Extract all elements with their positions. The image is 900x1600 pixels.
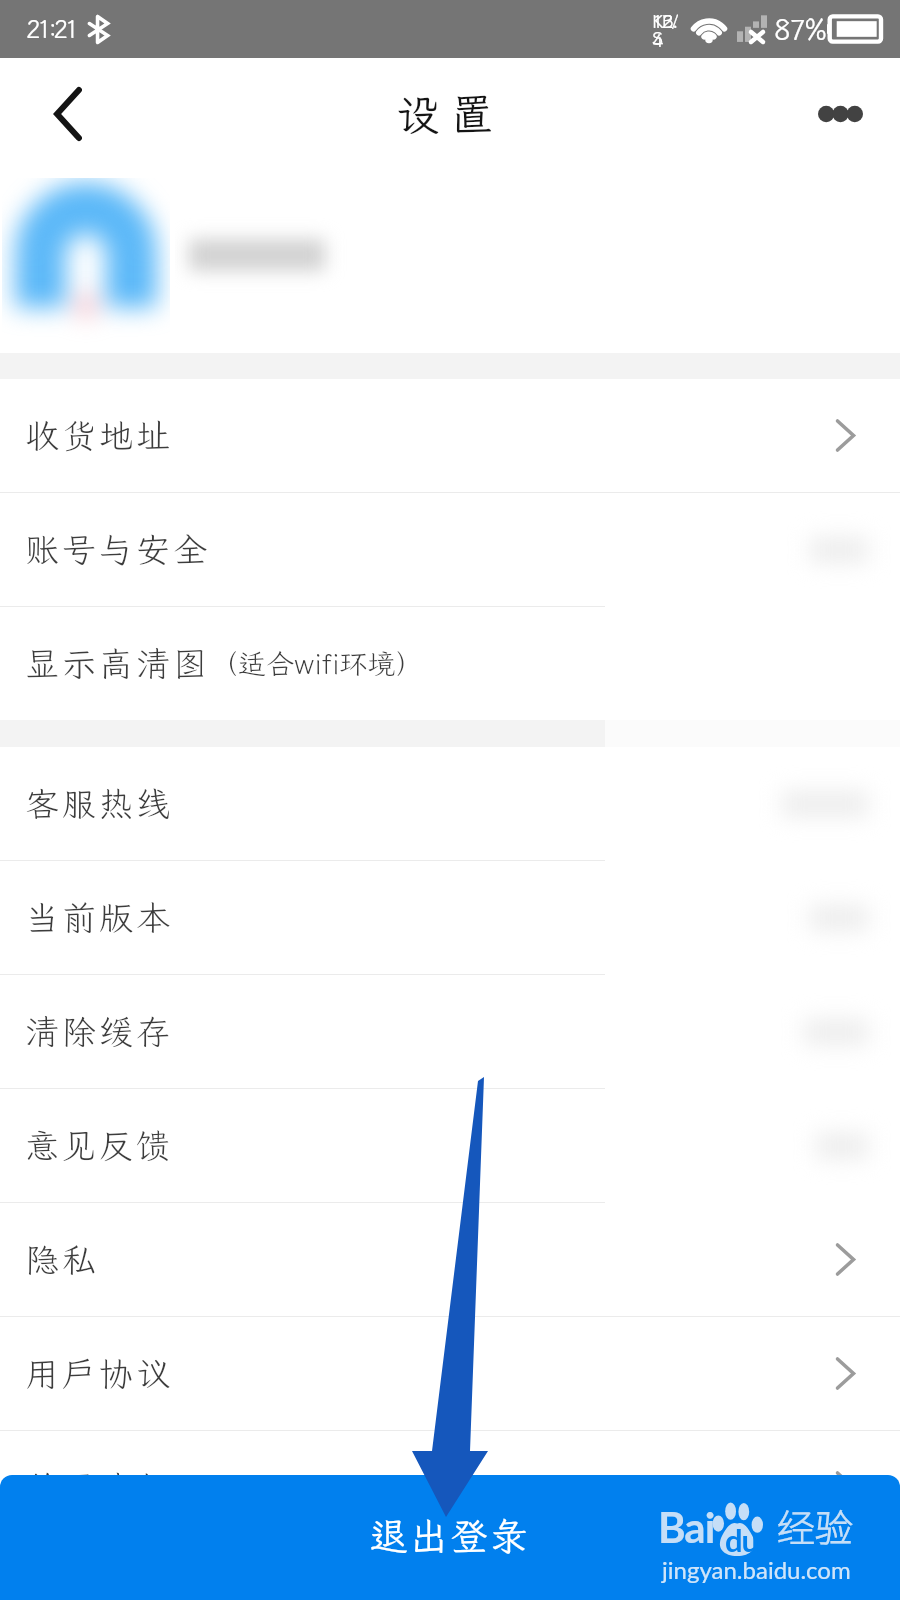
staticText: du [725, 1521, 759, 1558]
staticText: 21:21 [26, 13, 76, 45]
staticText: 显示高清图 [25, 641, 210, 686]
button[interactable]: 显示高清图 [0, 607, 900, 720]
button[interactable]: 收货地址 [0, 379, 900, 492]
staticText: 隐私 [25, 1237, 99, 1282]
button[interactable]: 当前版本 [0, 861, 900, 974]
staticText: 经验 [777, 1498, 854, 1553]
button[interactable]: 账号与安全 [0, 493, 900, 606]
button[interactable]: More options [790, 58, 900, 170]
staticText: 关于我们 [25, 1465, 173, 1510]
staticText: 87% [774, 11, 826, 48]
staticText: 账号与安全 [25, 527, 210, 572]
staticText: 设置 [396, 85, 504, 143]
staticText: （适合wifi环境） [210, 645, 424, 682]
button[interactable]: 客服热线 [0, 747, 900, 860]
staticText: 用户协议 [25, 1351, 173, 1396]
button[interactable]: 关于我们 [0, 1431, 900, 1544]
button[interactable]: 隐私 [0, 1203, 900, 1316]
staticText: 12.4 [652, 8, 684, 50]
staticText: 意见反馈 [25, 1123, 173, 1168]
staticText: jingyan.baidu.com [662, 1555, 851, 1584]
staticText: 当前版本 [25, 895, 173, 940]
button[interactable]: 清除缓存 [0, 975, 900, 1088]
staticText: 客服热线 [25, 781, 173, 826]
staticText: 清除缓存 [25, 1009, 173, 1054]
button[interactable]: 用户协议 [0, 1317, 900, 1430]
staticText: 退出登录 [370, 1511, 531, 1561]
staticText: 收货地址 [25, 413, 173, 458]
button[interactable] [0, 170, 900, 353]
button[interactable]: 意见反馈 [0, 1089, 900, 1202]
button[interactable]: 退出登录 [0, 1475, 900, 1600]
button[interactable]: Back [0, 58, 120, 170]
staticText: KB/S [652, 9, 684, 50]
staticText: Bai [658, 1502, 715, 1552]
